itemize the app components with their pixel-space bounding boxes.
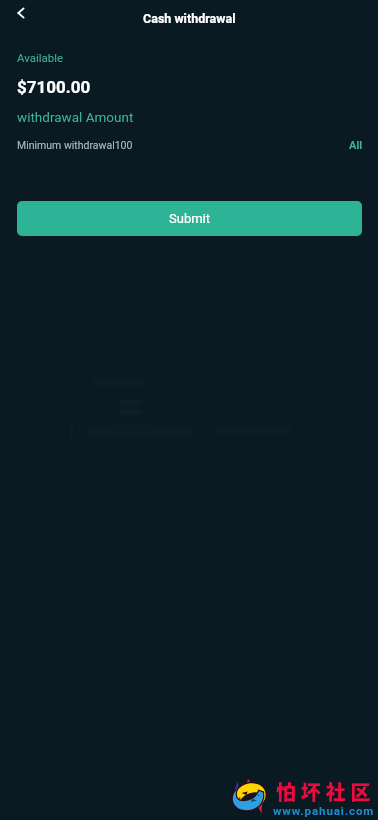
- staticText: Available: [17, 51, 64, 64]
- button[interactable]: All: [340, 131, 372, 160]
- button[interactable]: Back: [0, 0, 45, 33]
- staticText: Minimum withdrawal100: [17, 139, 133, 151]
- staticText: Cash withdrawal: [143, 11, 236, 26]
- staticText: All: [349, 139, 363, 152]
- staticText: www.pahuai.com: [273, 804, 375, 817]
- button[interactable]: Submit: [17, 201, 362, 236]
- staticText: withdrawal Amount: [17, 109, 134, 125]
- staticText: 怕坏社区: [276, 777, 376, 806]
- staticText: $7100.00: [17, 77, 91, 97]
- staticText: Submit: [169, 211, 210, 226]
